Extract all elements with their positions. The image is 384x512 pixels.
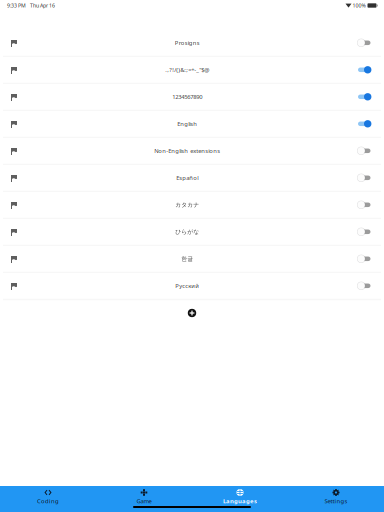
button[interactable]: Game <box>96 486 192 512</box>
button[interactable]: Español <box>0 165 384 192</box>
staticText: ひらがな <box>175 228 199 235</box>
staticText: Русский <box>175 282 199 290</box>
staticText: Español <box>176 174 198 182</box>
staticText: 9:33 PM <box>7 2 26 9</box>
button[interactable]: .,?!/()&:;=+-_"$@ <box>0 57 384 84</box>
staticText: 100% <box>351 2 365 9</box>
button[interactable]: カタカナ <box>0 192 384 219</box>
button[interactable]: ひらがな <box>0 219 384 246</box>
staticText: Coding <box>37 497 59 505</box>
button[interactable]: Add language <box>179 300 205 326</box>
button[interactable]: 한글 <box>0 246 384 273</box>
button[interactable]: Non-English extensions <box>0 138 384 165</box>
staticText: English <box>177 120 197 128</box>
button[interactable]: Languages <box>192 486 288 512</box>
button[interactable]: English <box>0 111 384 138</box>
staticText: 1234567890 <box>172 93 202 101</box>
staticText: Prosigns <box>175 39 200 47</box>
staticText: Non-English extensions <box>154 147 220 155</box>
staticText: Languages <box>223 497 257 505</box>
staticText: .,?!/()&:;=+-_"$@ <box>165 66 209 74</box>
button[interactable]: Prosigns <box>0 30 384 57</box>
staticText: Settings <box>324 497 347 505</box>
staticText: Game <box>136 497 151 505</box>
button[interactable]: Settings <box>288 486 384 512</box>
button[interactable]: 1234567890 <box>0 84 384 111</box>
staticText: Thu Apr 16 <box>30 2 55 9</box>
button[interactable]: Русский <box>0 273 384 300</box>
button[interactable]: Coding <box>0 486 96 512</box>
staticText: 한글 <box>181 255 193 262</box>
staticText: カタカナ <box>175 201 199 208</box>
